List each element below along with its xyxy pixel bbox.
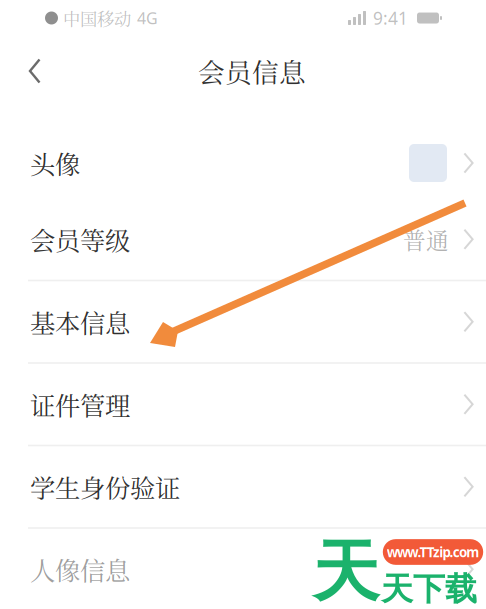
button[interactable]: 人像信息 [0,528,486,609]
staticText: www.TTzip.com [387,543,479,561]
staticText: 基本信息 [30,303,130,340]
button[interactable]: Back [8,44,62,97]
button[interactable]: 学生身份验证 [0,445,486,528]
button[interactable]: 头像 [0,127,486,199]
staticText: 天 [312,531,379,609]
staticText: 人像信息 [30,551,130,587]
staticText: 4G [137,7,158,29]
staticText: 普通 [403,223,449,256]
staticText: 学生身份验证 [30,468,180,505]
button[interactable]: 基本信息 [0,280,486,363]
button[interactable]: 会员等级 [0,198,486,280]
staticText: 天下载 [381,569,477,609]
staticText: 证件管理 [30,386,130,422]
staticText: 中国移动 [63,5,131,30]
button[interactable]: 证件管理 [0,363,486,445]
staticText: 会员等级 [30,221,130,257]
staticText: 头像 [30,145,80,181]
staticText: 9:41 [373,6,408,29]
staticText: 会员信息 [198,52,306,90]
